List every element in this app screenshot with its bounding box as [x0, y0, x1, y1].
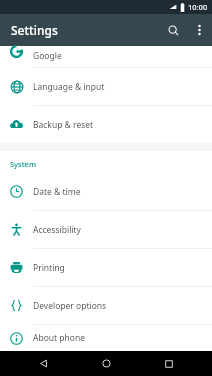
button[interactable]: Home — [86, 351, 126, 376]
staticText: Printing — [33, 262, 65, 274]
button[interactable]: Backup & reset — [0, 106, 212, 143]
button[interactable]: More options — [186, 17, 212, 43]
staticText: Google — [33, 50, 62, 62]
staticText: Backup & reset — [33, 119, 94, 131]
staticText: Accessibility — [33, 224, 81, 236]
staticText: Developer options — [33, 300, 107, 312]
button[interactable]: Printing — [0, 249, 212, 286]
button[interactable]: Search — [160, 17, 186, 43]
button[interactable]: About phone — [0, 325, 212, 351]
button[interactable]: Back — [23, 351, 63, 376]
button[interactable]: Date & time — [0, 173, 212, 210]
button[interactable]: Developer options — [0, 287, 212, 324]
staticText: About phone — [33, 332, 86, 344]
staticText: System — [10, 159, 37, 169]
button[interactable]: Recent apps — [149, 351, 189, 376]
button[interactable]: Accessibility — [0, 211, 212, 248]
button[interactable]: Language & input — [0, 68, 212, 105]
staticText: 10:00 — [188, 2, 208, 12]
button[interactable]: Google — [0, 46, 212, 67]
staticText: Date & time — [33, 186, 81, 198]
staticText: Language & input — [33, 81, 105, 93]
staticText: Settings — [11, 22, 58, 38]
